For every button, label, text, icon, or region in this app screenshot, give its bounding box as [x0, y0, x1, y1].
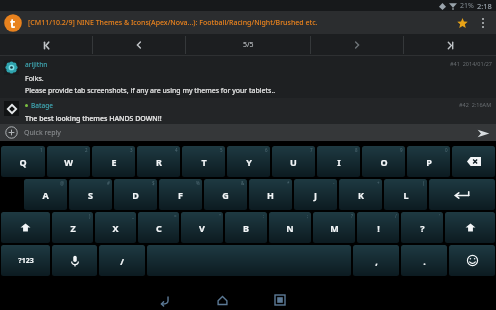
button[interactable]: L	[384, 179, 427, 210]
button[interactable]: First page	[0, 34, 92, 56]
button[interactable]: Page 5 of 5	[186, 34, 310, 56]
button[interactable]: N	[269, 212, 311, 243]
button[interactable]: D	[114, 179, 157, 210]
button[interactable]: Enter	[429, 179, 495, 210]
staticText: 2	[85, 147, 88, 153]
staticText: Folks.	[25, 74, 44, 84]
staticText: &	[241, 180, 245, 186]
button[interactable]: Space	[147, 245, 351, 276]
button[interactable]: Send	[475, 125, 491, 141]
button[interactable]: Add attachment	[5, 126, 18, 139]
staticText: 4	[175, 147, 178, 153]
staticText: /	[395, 213, 397, 219]
staticText: The best looking themes HANDS DOWN!!	[25, 114, 162, 124]
button[interactable]: Back	[151, 290, 177, 310]
staticText: t	[10, 15, 16, 31]
button[interactable]: Favorite	[451, 12, 473, 34]
button[interactable]: Quick reply	[24, 124, 469, 141]
button[interactable]: /	[99, 245, 145, 276]
button[interactable]: C	[138, 212, 179, 243]
staticText: _	[132, 213, 134, 219]
button[interactable]: Recent apps	[267, 290, 293, 310]
button[interactable]: .	[401, 245, 447, 276]
button[interactable]: Next page	[311, 34, 403, 56]
staticText: !	[377, 222, 380, 234]
button[interactable]: P	[407, 146, 450, 177]
button[interactable]: Shift	[1, 212, 50, 243]
staticText: 5	[220, 147, 223, 153]
staticText: D	[132, 189, 139, 201]
button[interactable]: Last page	[404, 34, 496, 56]
button[interactable]: X	[95, 212, 136, 243]
button[interactable]: T	[182, 146, 225, 177]
staticText: M	[330, 222, 339, 234]
button[interactable]: J	[294, 179, 337, 210]
staticText: K	[358, 189, 364, 201]
button[interactable]: Backspace	[452, 146, 495, 177]
staticText: L	[403, 189, 409, 201]
staticText: '	[439, 213, 441, 219]
button[interactable]: Navigate up	[3, 13, 23, 33]
button[interactable]: !	[357, 212, 399, 243]
staticText: E	[111, 156, 117, 168]
staticText: [CM11/10.2/9] NINE Themes & Icons(Apex/N…	[28, 18, 451, 28]
staticText: 7	[310, 147, 313, 153]
staticText: arijithn	[25, 60, 48, 69]
button[interactable]: Y	[227, 146, 270, 177]
button[interactable]: Home	[209, 290, 235, 310]
button[interactable]: Previous page	[93, 34, 185, 56]
button[interactable]: ,	[353, 245, 399, 276]
staticText: .	[423, 255, 426, 267]
staticText: F	[178, 189, 183, 201]
staticText: ,	[375, 255, 378, 267]
staticText: ?	[420, 222, 425, 234]
button[interactable]: O	[362, 146, 405, 177]
staticText: 0	[445, 147, 448, 153]
button[interactable]: Shift	[445, 212, 495, 243]
staticText: S	[88, 189, 93, 201]
button[interactable]: S	[69, 179, 112, 210]
button[interactable]: W	[47, 146, 90, 177]
staticText: V	[199, 222, 205, 234]
staticText: ;	[307, 213, 309, 219]
staticText: (	[423, 180, 425, 186]
staticText: @	[60, 180, 65, 186]
button[interactable]: ?	[401, 212, 443, 243]
staticText: H	[267, 189, 274, 201]
staticText: X	[112, 222, 119, 234]
button[interactable]: K	[339, 179, 382, 210]
button[interactable]: Emoji	[449, 245, 495, 276]
staticText: W	[64, 156, 73, 168]
button[interactable]: arijithn	[0, 56, 496, 98]
button[interactable]: B	[225, 212, 267, 243]
button[interactable]: Z	[52, 212, 93, 243]
button[interactable]: Symbols	[1, 245, 50, 276]
button[interactable]: H	[249, 179, 292, 210]
button[interactable]: G	[204, 179, 247, 210]
button[interactable]: M	[313, 212, 355, 243]
staticText: R	[156, 156, 162, 168]
button[interactable]: E	[92, 146, 135, 177]
staticText: 1	[40, 147, 43, 153]
button[interactable]: V	[181, 212, 223, 243]
staticText: C	[156, 222, 162, 234]
staticText: 6	[265, 147, 268, 153]
button[interactable]: U	[272, 146, 315, 177]
staticText: $	[152, 180, 155, 186]
button[interactable]: Voice input	[52, 245, 97, 276]
button[interactable]: Batage	[0, 98, 496, 124]
button[interactable]: More options	[473, 12, 493, 34]
button[interactable]: F	[159, 179, 202, 210]
staticText: %	[196, 180, 200, 186]
button[interactable]: Q	[1, 146, 45, 177]
staticText: G	[222, 189, 229, 201]
button[interactable]: A	[24, 179, 67, 210]
staticText: 8	[355, 147, 358, 153]
staticText: :	[263, 213, 265, 219]
button[interactable]: R	[137, 146, 180, 177]
button[interactable]: I	[317, 146, 360, 177]
staticText: #	[107, 180, 110, 186]
staticText: J	[314, 189, 317, 201]
staticText: )	[89, 213, 91, 219]
staticText: 5/5	[243, 40, 254, 50]
